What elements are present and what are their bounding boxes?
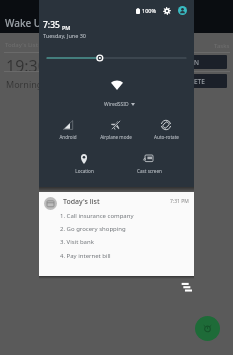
- staticText: 19:30: [6, 55, 47, 77]
- button[interactable]: Cast screen: [125, 154, 173, 174]
- staticText: PM: [62, 24, 71, 31]
- staticText: WiredSSID: [104, 101, 129, 108]
- button[interactable]: User account: [178, 6, 187, 15]
- staticText: Tasks: [214, 42, 230, 50]
- staticText: Location: [75, 168, 94, 174]
- staticText: Today's list: [63, 197, 100, 207]
- staticText: 1. Call insurance company: [60, 212, 134, 220]
- staticText: Auto-rotate: [154, 134, 179, 140]
- button[interactable]: Airplane mode: [92, 120, 140, 140]
- button[interactable]: Android: [44, 120, 92, 140]
- button[interactable]: Location: [60, 154, 108, 174]
- button[interactable]: Brightness: [44, 52, 189, 64]
- staticText: Wake Up: [5, 16, 48, 30]
- button[interactable]: Clear all notifications: [181, 282, 192, 293]
- staticText: Tuesday, June 30: [43, 32, 86, 39]
- staticText: Cast screen: [137, 168, 162, 174]
- staticText: 100%: [142, 7, 157, 14]
- staticText: N: [194, 58, 199, 67]
- staticText: Morning: [6, 78, 43, 90]
- button[interactable]: Today's list: [39, 192, 194, 276]
- button[interactable]: Auto-rotate: [142, 120, 190, 140]
- button[interactable]: Settings: [163, 7, 171, 15]
- button[interactable]: WiredSSID: [104, 100, 135, 108]
- button[interactable]: Add alarm: [195, 316, 220, 341]
- staticText: Today's List: [5, 41, 38, 49]
- staticText: Airplane mode: [100, 134, 132, 140]
- staticText: Android: [59, 134, 77, 140]
- staticText: 7:35: [43, 19, 60, 31]
- staticText: 4. Pay internet bill: [60, 252, 111, 260]
- staticText: 2. Go grocery shopping: [60, 225, 126, 233]
- staticText: 3. Visit bank: [60, 238, 94, 246]
- button[interactable]: N: [192, 55, 227, 69]
- staticText: ETE: [194, 77, 205, 86]
- button[interactable]: ETE: [192, 74, 227, 88]
- staticText: 7:31 PM: [170, 198, 189, 205]
